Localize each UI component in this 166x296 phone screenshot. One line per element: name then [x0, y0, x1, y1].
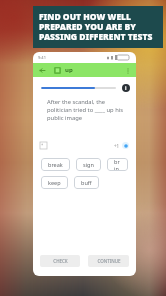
button[interactable]: More options	[124, 67, 131, 74]
staticText: buff	[81, 179, 92, 186]
staticText: sign	[83, 161, 94, 168]
staticText: keep	[48, 179, 61, 186]
button[interactable]: CONTINUE	[88, 255, 129, 267]
staticText: +1	[114, 143, 120, 149]
staticText: break	[48, 161, 63, 168]
button[interactable]: CHECK	[40, 255, 80, 267]
button[interactable]: break	[41, 158, 70, 171]
staticText: After the scandal, the politician tried …	[47, 98, 124, 122]
staticText: FIND OUT HOW WELL PREPARED YOU ARE BY PA…	[39, 11, 153, 43]
staticText: i	[125, 85, 127, 92]
staticText: bring	[114, 158, 121, 171]
button[interactable]: buff	[74, 176, 99, 189]
button[interactable]: Image	[40, 142, 47, 149]
staticText: CONTINUE	[97, 258, 121, 264]
staticText: up	[65, 66, 73, 74]
button[interactable]: Hint	[122, 142, 129, 149]
staticText: CHECK	[53, 258, 68, 264]
button[interactable]: Info	[122, 84, 130, 92]
button[interactable]: bring	[107, 158, 128, 171]
button[interactable]: Back	[38, 66, 46, 74]
staticText: 9:41	[38, 55, 46, 60]
button[interactable]: sign	[76, 158, 101, 171]
button[interactable]: keep	[41, 176, 68, 189]
